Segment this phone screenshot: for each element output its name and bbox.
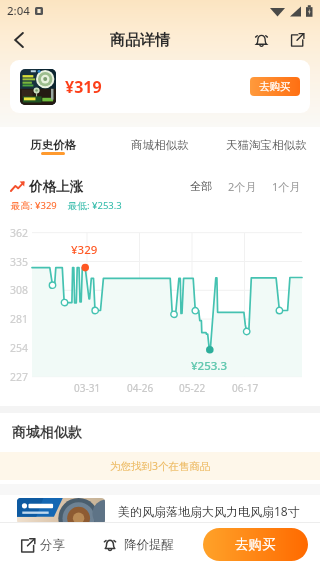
- button[interactable]: 去购买: [250, 77, 300, 96]
- staticText: 06-17: [232, 381, 259, 395]
- staticText: 降价提醒: [124, 537, 174, 553]
- staticText: 308: [10, 283, 29, 297]
- staticText: 价格上涨: [29, 178, 83, 195]
- button[interactable]: 2个月: [225, 177, 260, 195]
- staticText: 商城相似款: [12, 424, 82, 442]
- button[interactable]: ¥319: [10, 60, 310, 113]
- staticText: 全部: [190, 179, 212, 193]
- button[interactable]: 天猫淘宝相似款: [213, 127, 320, 163]
- staticText: ¥253.3: [191, 358, 228, 374]
- button[interactable]: Price alert: [246, 25, 276, 55]
- staticText: 最低: ¥253.3: [68, 199, 122, 212]
- staticText: 历史价格: [30, 138, 76, 152]
- button[interactable]: Back: [6, 26, 34, 54]
- button[interactable]: 历史价格: [0, 127, 106, 163]
- staticText: 商品详情: [110, 31, 170, 50]
- button[interactable]: 分享: [14, 522, 70, 568]
- staticText: 2:04: [7, 3, 30, 19]
- button[interactable]: 1个月: [269, 177, 304, 195]
- staticText: 227: [10, 370, 29, 384]
- staticText: 281: [10, 312, 29, 326]
- staticText: 分享: [40, 537, 65, 553]
- button[interactable]: 全部: [187, 177, 215, 195]
- button[interactable]: 商城相似款: [106, 127, 213, 163]
- staticText: 2个月: [228, 179, 257, 193]
- staticText: 254: [10, 341, 29, 355]
- button[interactable]: Share: [282, 25, 312, 55]
- staticText: 去购买: [259, 80, 291, 93]
- staticText: ¥319: [65, 76, 102, 98]
- staticText: 为您找到3个在售商品: [110, 459, 211, 473]
- staticText: 362: [10, 226, 29, 240]
- staticText: 04-26: [127, 381, 154, 395]
- button[interactable]: 美的风扇落地扇大风力电风扇18寸: [17, 498, 310, 524]
- staticText: 美的风扇落地扇大风力电风扇18寸: [118, 503, 300, 519]
- staticText: 商城相似款: [131, 138, 189, 152]
- staticText: ¥329: [71, 242, 98, 258]
- staticText: 05-22: [179, 381, 206, 395]
- button[interactable]: 去购买: [203, 528, 308, 561]
- button[interactable]: 降价提醒: [96, 522, 180, 568]
- staticText: 335: [10, 255, 29, 269]
- staticText: 去购买: [235, 536, 276, 553]
- staticText: 天猫淘宝相似款: [226, 138, 307, 152]
- staticText: 03-31: [74, 381, 101, 395]
- staticText: 最高: ¥329: [11, 199, 57, 212]
- staticText: 1个月: [272, 179, 301, 193]
